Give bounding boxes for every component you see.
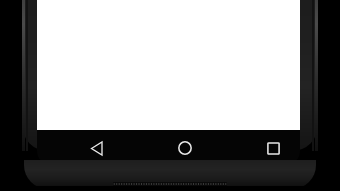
button[interactable]: Recent apps [257, 132, 289, 164]
button[interactable]: Back [81, 132, 113, 164]
button[interactable]: Home [169, 132, 201, 164]
